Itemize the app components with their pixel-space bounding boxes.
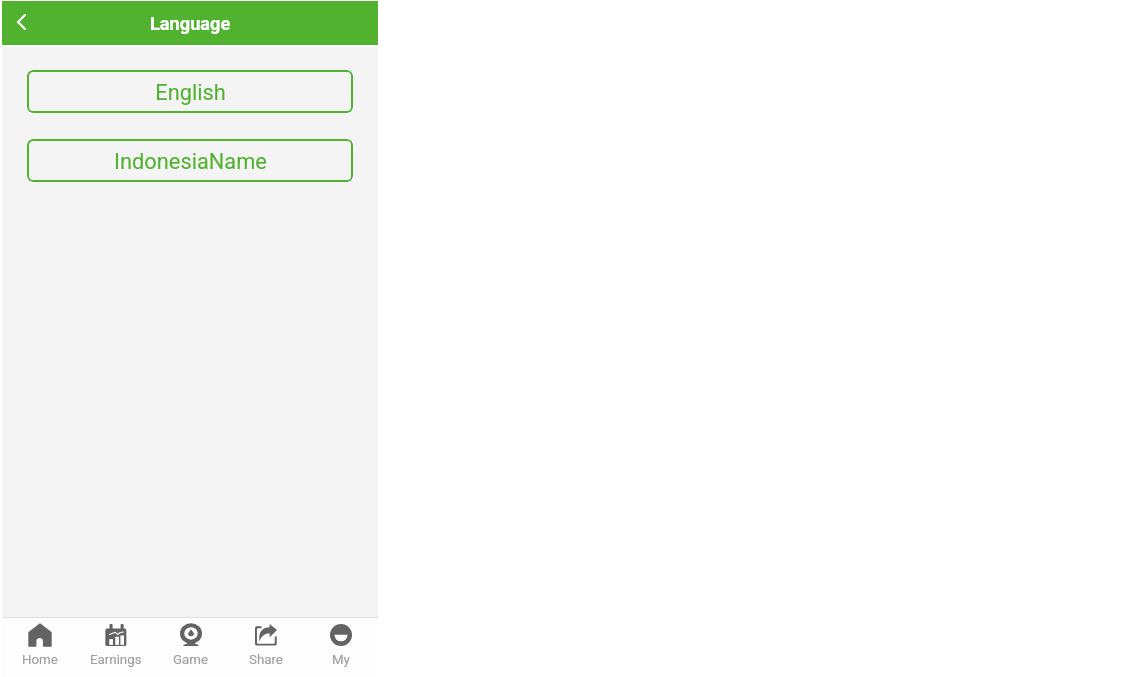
staticText: Earnings bbox=[90, 652, 142, 668]
staticText: Share bbox=[249, 652, 283, 668]
button[interactable]: Home bbox=[2, 618, 78, 677]
staticText: Language bbox=[150, 13, 231, 34]
button[interactable]: Game bbox=[153, 618, 228, 677]
staticText: English bbox=[155, 80, 226, 106]
button[interactable]: Share bbox=[228, 618, 303, 677]
button[interactable]: IndonesiaName bbox=[27, 139, 353, 182]
staticText: My bbox=[332, 652, 350, 668]
staticText: Game bbox=[173, 652, 209, 668]
button[interactable]: Earnings bbox=[78, 618, 153, 677]
staticText: Home bbox=[22, 652, 58, 668]
button[interactable]: Back bbox=[2, 3, 42, 43]
staticText: IndonesiaName bbox=[114, 149, 267, 175]
button[interactable]: English bbox=[27, 70, 353, 113]
button[interactable]: My bbox=[303, 618, 378, 677]
